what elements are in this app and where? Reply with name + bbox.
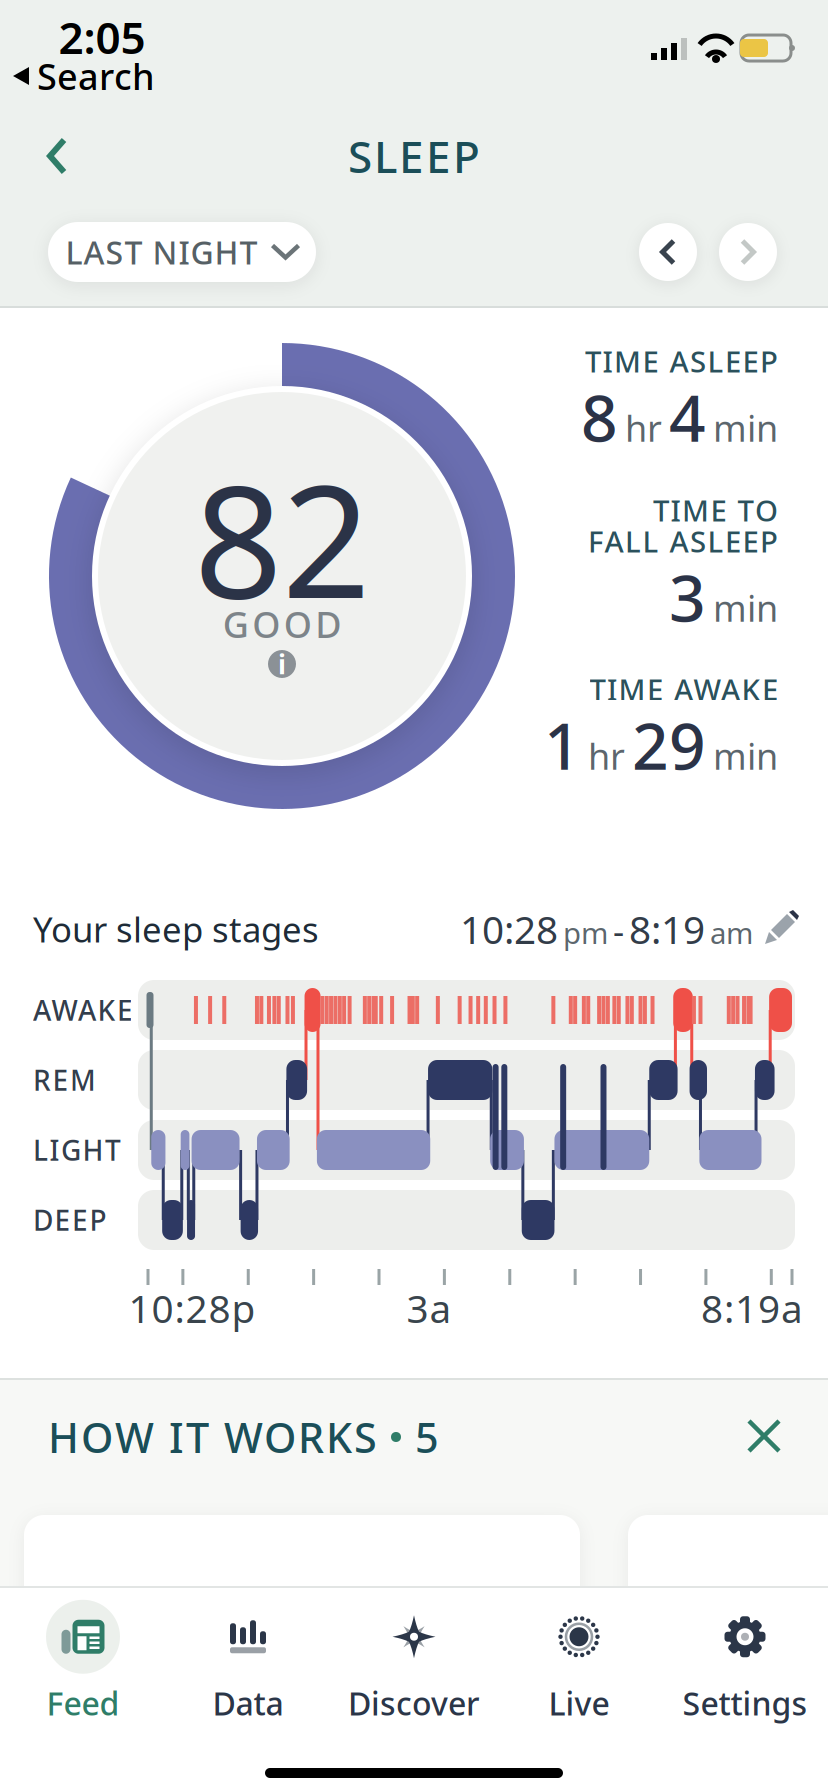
button[interactable]: How it works card	[24, 1515, 580, 1625]
staticText: 10:28p	[128, 1282, 255, 1334]
button[interactable]: About sleep score	[268, 646, 296, 682]
staticText: am	[710, 913, 753, 952]
staticText: 1	[544, 702, 581, 787]
staticText: min	[713, 584, 778, 632]
staticText: 8:19	[629, 903, 705, 955]
staticText: REM	[33, 1061, 96, 1099]
staticText: LIGHT	[33, 1131, 121, 1169]
staticText: Data	[212, 1682, 283, 1724]
staticText: hr	[625, 404, 662, 452]
button[interactable]: How it works card	[628, 1515, 828, 1625]
staticText: FALL ASLEEP	[588, 521, 778, 560]
staticText: 3a	[406, 1282, 451, 1334]
button[interactable]: LAST NIGHT	[48, 222, 316, 282]
button[interactable]: Back	[48, 138, 68, 174]
staticText: TIME AWAKE	[589, 669, 778, 708]
staticText: min	[713, 732, 778, 780]
button[interactable]: Close	[749, 1421, 779, 1451]
button[interactable]: Next night	[719, 223, 777, 281]
staticText: TIME TO	[653, 490, 778, 529]
staticText: Live	[548, 1682, 609, 1724]
staticText: i	[278, 646, 286, 682]
staticText: 10:28	[460, 903, 558, 955]
staticText: Your sleep stages	[33, 906, 319, 952]
button[interactable]: Previous night	[639, 223, 697, 281]
staticText: 29	[632, 702, 706, 787]
staticText: Feed	[46, 1682, 119, 1724]
staticText: DEEP	[33, 1201, 106, 1239]
staticText: AWAKE	[33, 991, 133, 1029]
staticText: TIME ASLEEP	[585, 341, 778, 380]
staticText: hr	[588, 732, 625, 780]
button[interactable]: Discover	[348, 1600, 480, 1724]
staticText: pm	[563, 913, 608, 952]
staticText: -	[613, 907, 624, 953]
staticText: 3	[669, 554, 706, 639]
button[interactable]: Edit sleep times	[763, 910, 797, 946]
button[interactable]: Live	[542, 1600, 616, 1724]
staticText: LAST NIGHT	[65, 231, 257, 273]
staticText: 5	[415, 1410, 439, 1464]
button[interactable]: Data	[211, 1600, 285, 1724]
staticText: 2:05	[58, 8, 145, 66]
staticText: SLEEP	[348, 127, 480, 185]
button[interactable]: Feed	[46, 1600, 120, 1724]
staticText: Discover	[348, 1682, 480, 1724]
staticText: min	[713, 404, 778, 452]
staticText: 82	[194, 435, 370, 641]
staticText: Search	[37, 52, 155, 100]
button[interactable]: Search	[13, 52, 155, 100]
staticText: GOOD	[223, 600, 341, 648]
staticText: HOW IT WORKS	[48, 1410, 377, 1464]
staticText: 8:19a	[701, 1282, 803, 1334]
staticText: 8	[581, 374, 618, 459]
staticText: 4	[669, 374, 706, 459]
button[interactable]: Settings	[682, 1600, 807, 1724]
staticText: Settings	[682, 1682, 807, 1724]
